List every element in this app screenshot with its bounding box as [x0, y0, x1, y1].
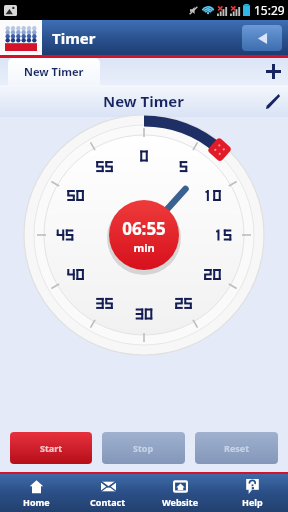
staticText: Stop [133, 442, 154, 454]
button[interactable]: Edit [256, 85, 288, 117]
staticText: New Timer [24, 64, 84, 79]
button[interactable]: Add timer [258, 58, 288, 85]
staticText: Contact [90, 496, 126, 508]
staticText: min [133, 240, 155, 255]
staticText: Website [162, 496, 199, 508]
staticText: Reset [224, 442, 250, 454]
button[interactable]: Stop [102, 432, 185, 464]
button[interactable]: Back [242, 25, 282, 51]
button[interactable]: Home [0, 474, 72, 512]
staticText: 15:29 [254, 2, 285, 18]
staticText: New Timer [103, 91, 185, 111]
button[interactable]: New Timer [8, 58, 100, 85]
staticText: Home [23, 496, 50, 508]
staticText: Help [242, 496, 263, 508]
staticText: Timer [52, 28, 96, 48]
button[interactable]: Contact [72, 474, 144, 512]
button[interactable]: Website [144, 474, 216, 512]
staticText: Start [40, 442, 63, 454]
button[interactable]: Start [10, 432, 92, 464]
staticText: 06:55 [122, 217, 166, 240]
button[interactable]: Help [216, 474, 288, 512]
button[interactable]: Reset [195, 432, 278, 464]
